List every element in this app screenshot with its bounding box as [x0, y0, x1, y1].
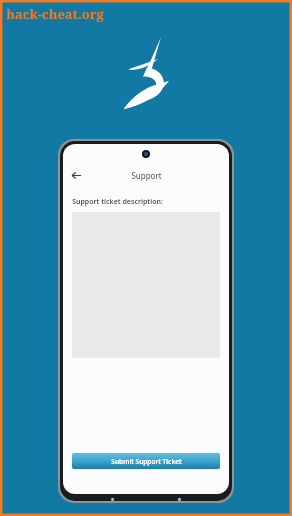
staticText: Support ticket description: — [72, 197, 163, 207]
staticText: hack-cheat.org — [6, 5, 104, 23]
button[interactable]: Submit Support Ticket — [72, 453, 220, 469]
button[interactable]: Back — [66, 165, 86, 185]
staticText: Support — [131, 170, 162, 181]
staticText: Submit Support Ticket — [111, 457, 182, 466]
